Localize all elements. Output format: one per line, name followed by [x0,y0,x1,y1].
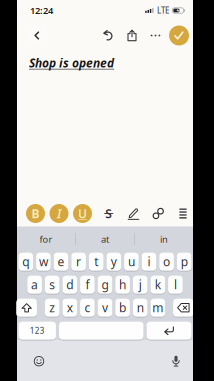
staticText: q [22,254,29,270]
button[interactable] [169,25,189,45]
staticText: c [84,300,90,316]
staticText: i [147,254,150,270]
button[interactable]: u [124,253,139,271]
button[interactable]: t [89,253,103,271]
button[interactable]: p [177,253,191,271]
staticText: h [119,277,126,293]
button[interactable] [175,203,191,223]
button[interactable] [26,348,52,374]
button[interactable] [173,299,194,317]
staticText: t [94,254,98,270]
button[interactable]: d [62,276,77,294]
staticText: 123 [30,325,45,336]
staticText: B [31,205,39,221]
staticText: Shop is opened [29,55,114,71]
staticText: l [174,277,177,293]
button[interactable] [98,24,118,46]
button[interactable]: U [73,204,92,223]
button[interactable] [59,322,144,340]
staticText: e [57,254,64,270]
staticText: w [39,254,48,270]
staticText: b [119,300,126,316]
button[interactable]: i [142,253,156,271]
staticText: in [160,233,168,245]
button[interactable]: 123 [18,322,56,340]
button[interactable]: r [71,253,86,271]
button[interactable] [150,203,166,223]
staticText: y [111,254,117,270]
staticText: k [155,277,161,293]
button[interactable]: a [27,276,42,294]
button[interactable]: z [45,299,59,317]
button[interactable] [147,322,192,340]
button[interactable] [122,24,142,46]
button[interactable]: v [98,299,112,317]
staticText: U [78,205,87,221]
button[interactable]: w [36,253,51,271]
button[interactable]: j [133,276,147,294]
staticText: f [85,277,89,293]
staticText: g [101,277,108,293]
staticText: 12:24 [30,4,53,17]
staticText: I [57,205,61,221]
button[interactable]: g [98,276,112,294]
staticText: s [49,277,55,293]
button[interactable] [16,299,37,317]
staticText: a [31,277,38,293]
button[interactable]: m [150,299,165,317]
staticText: x [67,300,73,316]
button[interactable]: b [115,299,130,317]
button[interactable]: e [54,253,68,271]
button[interactable]: f [80,276,95,294]
button[interactable]: I [49,204,68,223]
button[interactable] [163,348,189,374]
staticText: z [49,300,55,316]
button[interactable] [145,24,166,46]
staticText: d [66,277,73,293]
button[interactable]: q [18,253,33,271]
staticText: n [137,300,144,316]
button[interactable]: c [80,299,95,317]
button[interactable]: S [101,203,117,223]
staticText: m [152,300,163,316]
button[interactable]: h [115,276,130,294]
staticText: for [39,233,52,245]
button[interactable]: in [135,226,193,252]
staticText: S [105,205,112,221]
staticText: at [101,233,109,245]
staticText: o [163,254,170,270]
button[interactable]: x [62,299,77,317]
button[interactable] [25,23,49,47]
staticText: LTE [157,5,169,16]
button[interactable]: at [76,226,134,252]
button[interactable]: k [150,276,165,294]
button[interactable]: B [26,204,45,223]
button[interactable]: y [106,253,121,271]
button[interactable]: s [45,276,59,294]
button[interactable]: o [159,253,174,271]
button[interactable]: for [17,226,75,252]
staticText: u [128,254,135,270]
staticText: v [102,300,108,316]
staticText: r [76,254,81,270]
button[interactable]: l [168,276,183,294]
button[interactable]: n [133,299,147,317]
staticText: j [139,277,142,293]
staticText: p [181,254,188,270]
button[interactable] [125,203,141,223]
